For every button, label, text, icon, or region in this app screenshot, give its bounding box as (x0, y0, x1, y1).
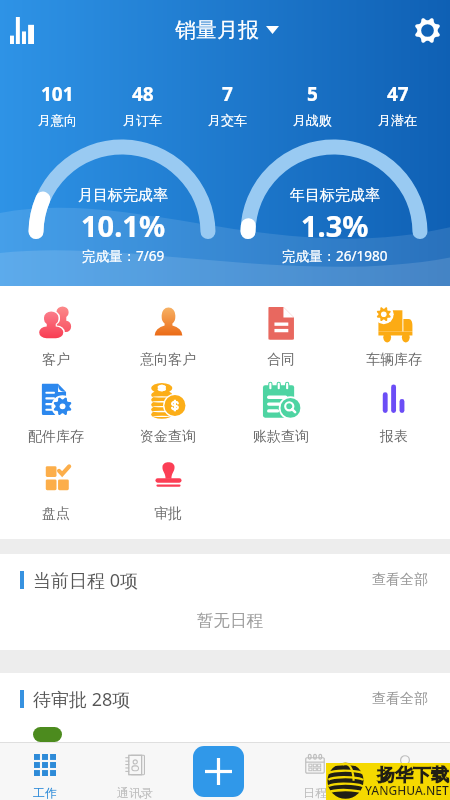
button[interactable]: 查看全部 (370, 686, 430, 712)
staticText: 月意向 (38, 112, 77, 128)
staticText: 47 (387, 81, 409, 107)
staticText: 资金查询 (140, 428, 196, 446)
staticText: 合同 (267, 351, 295, 369)
staticText: 月交车 (208, 112, 247, 128)
button[interactable]: Add (193, 746, 244, 797)
staticText: 客户 (42, 351, 70, 369)
staticText: 配件库存 (28, 428, 84, 446)
button[interactable]: 意向客户 (112, 303, 224, 380)
staticText: 月目标完成率 (78, 186, 168, 205)
staticText: 审批 (154, 505, 182, 523)
staticText: 工作 (33, 785, 57, 800)
staticText: 意向客户 (140, 351, 196, 369)
staticText: 1.3% (301, 206, 369, 245)
staticText: 48 (132, 81, 154, 107)
button[interactable]: 日程 (270, 743, 360, 800)
staticText: 通讯录 (117, 785, 153, 800)
staticText: 10.1% (81, 206, 166, 245)
staticText: 销量月报 (175, 17, 259, 43)
button[interactable]: 通讯录 (90, 743, 180, 800)
button[interactable]: 盘点 (0, 457, 112, 534)
staticText: 101 (41, 81, 74, 107)
staticText: 暂无日程 (197, 610, 263, 631)
staticText: 车辆库存 (366, 351, 422, 369)
staticText: YANGHUA.NET (365, 782, 449, 798)
button[interactable]: 资金查询 (112, 380, 224, 457)
button[interactable]: 合同 (224, 303, 337, 380)
button[interactable]: 查看全部 (370, 567, 430, 593)
button[interactable]: 账款查询 (224, 380, 337, 457)
staticText: 月战败 (293, 112, 332, 128)
staticText: 年目标完成率 (290, 186, 380, 205)
button[interactable]: 配件库存 (0, 380, 112, 457)
staticText: 待审批 28项 (33, 687, 131, 712)
staticText: 完成量：26/1980 (282, 247, 388, 265)
button[interactable]: Settings (404, 7, 450, 54)
staticText: 查看全部 (372, 690, 428, 708)
staticText: 7 (222, 81, 233, 107)
staticText: 完成量：7/69 (82, 247, 165, 265)
button[interactable]: Reports (1, 9, 43, 51)
button[interactable]: 审批 (112, 457, 224, 534)
button[interactable]: 车辆库存 (337, 303, 450, 380)
staticText: 查看全部 (372, 571, 428, 589)
staticText: 5 (307, 81, 318, 107)
staticText: 账款查询 (253, 428, 309, 446)
staticText: 月订车 (123, 112, 162, 128)
staticText: 盘点 (42, 505, 70, 523)
button[interactable]: 报表 (337, 380, 450, 457)
staticText: 我的 (393, 785, 417, 800)
staticText: 当前日程 0项 (33, 568, 138, 593)
button[interactable]: 47 (355, 81, 440, 128)
staticText: 扬华下载 (377, 764, 449, 787)
button[interactable]: 48 (100, 81, 185, 128)
staticText: 月潜在 (378, 112, 417, 128)
button[interactable]: 101 (15, 81, 100, 128)
button[interactable]: 工作 (0, 743, 90, 800)
button[interactable]: 我的 (360, 743, 450, 800)
staticText: 报表 (380, 428, 408, 446)
button[interactable]: 客户 (0, 303, 112, 380)
staticText: 日程 (303, 785, 327, 800)
button[interactable]: 7 (185, 81, 270, 128)
button[interactable]: 5 (270, 81, 355, 128)
button[interactable]: 销量月报 (170, 14, 284, 46)
